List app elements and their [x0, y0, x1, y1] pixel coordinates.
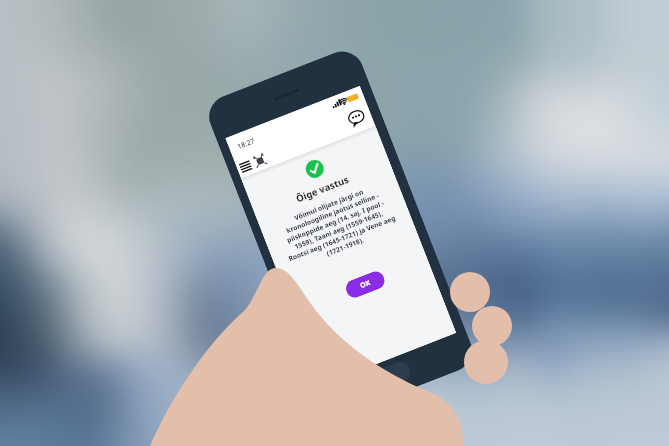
- staticText: 1559), Taani aeg (1559-1645),: [293, 209, 384, 251]
- staticText: Õige vastus: [294, 173, 351, 205]
- staticText: (1721-1918).: [325, 235, 365, 258]
- button[interactable]: Menu: [237, 157, 254, 176]
- staticText: kronoloogiline jaotus selline -: [285, 191, 380, 235]
- staticText: piiskoppide aeg (14. saj. I pool -: [285, 198, 385, 245]
- button[interactable]: Chat: [343, 105, 369, 130]
- button[interactable]: OK: [343, 269, 387, 300]
- button[interactable]: App logo: [249, 149, 269, 170]
- staticText: Rootsi aeg (1645-1721) ja Vene aeg: [287, 213, 397, 263]
- staticText: OK: [359, 278, 373, 291]
- staticText: 18:27: [236, 136, 256, 152]
- staticText: Võimul olijate järgi on: [293, 187, 365, 222]
